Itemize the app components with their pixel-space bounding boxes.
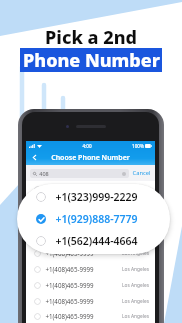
staticText: Los Angeles bbox=[122, 266, 149, 273]
staticText: +1(408)465-9999 bbox=[45, 281, 94, 289]
button[interactable]: +1(562)444-4664 bbox=[17, 230, 170, 252]
button[interactable]: +1(408)465-9999 bbox=[26, 309, 155, 323]
staticText: +1(408)465-9999 bbox=[45, 233, 94, 241]
staticText: Los Angeles bbox=[122, 313, 149, 320]
staticText: +1(408)465-9999 bbox=[45, 249, 94, 257]
button[interactable]: +1(408)465-9999 bbox=[26, 229, 155, 245]
button[interactable]: +1(408)465-9999 bbox=[26, 181, 155, 197]
staticText: +1(562)444-4664 bbox=[55, 234, 138, 248]
staticText: Phone Number bbox=[23, 48, 160, 72]
button[interactable]: +1(408)465-9999 bbox=[26, 261, 155, 277]
staticText: +1(408)465-9999 bbox=[45, 312, 94, 320]
staticText: Los Angeles bbox=[122, 218, 149, 225]
button[interactable]: +1(408)465-9999 bbox=[26, 213, 155, 229]
button[interactable]: +1(408)465-9999 bbox=[26, 277, 155, 293]
staticText: 4:00 bbox=[82, 143, 92, 149]
staticText: Pick a 2nd bbox=[45, 25, 137, 50]
button[interactable]: +1(323)999-2229 bbox=[17, 186, 170, 208]
staticText: +1(323)999-2229 bbox=[55, 190, 138, 204]
button[interactable]: +1(408)465-9999 bbox=[26, 293, 155, 309]
staticText: Los Angeles bbox=[122, 250, 149, 257]
button[interactable]: 408 bbox=[30, 169, 129, 178]
staticText: Los Angeles bbox=[122, 282, 149, 289]
staticText: Choose Phone Number bbox=[51, 153, 130, 163]
button[interactable]: Cancel bbox=[132, 169, 151, 177]
button[interactable]: Back bbox=[30, 153, 39, 162]
staticText: +1(408)465-9999 bbox=[45, 265, 94, 273]
button[interactable]: +1(408)465-9999 bbox=[26, 197, 155, 213]
staticText: +1(408)465-9999 bbox=[45, 201, 94, 209]
staticText: +1(929)888-7779 bbox=[55, 212, 138, 226]
staticText: +1(408)465-9999 bbox=[45, 217, 94, 225]
staticText: Los Angeles bbox=[122, 234, 149, 241]
staticText: Cancel bbox=[132, 169, 151, 177]
staticText: +1(408)465-9999 bbox=[45, 297, 94, 305]
staticText: 408 bbox=[39, 170, 49, 177]
staticText: Los Angeles bbox=[122, 298, 149, 305]
staticText: 100% bbox=[132, 143, 144, 149]
button[interactable]: +1(408)465-9999 bbox=[26, 245, 155, 261]
button[interactable]: +1(929)888-7779 bbox=[17, 208, 170, 230]
